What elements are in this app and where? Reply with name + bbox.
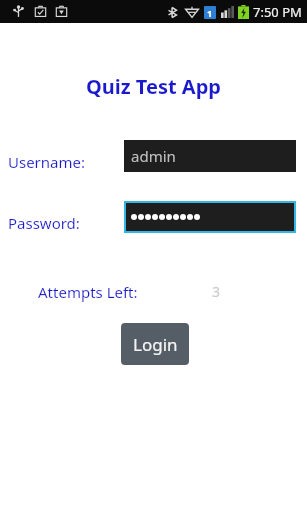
staticText: Password: bbox=[8, 213, 80, 233]
staticText: 1 bbox=[207, 7, 213, 19]
staticText: Username: bbox=[8, 152, 85, 172]
staticText: 7:50 PM bbox=[253, 3, 302, 21]
button[interactable]: admin bbox=[124, 140, 296, 172]
staticText: admin bbox=[131, 146, 176, 166]
staticText: Attempts Left: bbox=[38, 282, 138, 302]
button[interactable]: Login bbox=[121, 323, 189, 365]
staticText: 3 bbox=[212, 282, 221, 301]
staticText: Login bbox=[133, 333, 178, 356]
staticText: Quiz Test App bbox=[86, 73, 221, 100]
button[interactable] bbox=[126, 203, 294, 231]
